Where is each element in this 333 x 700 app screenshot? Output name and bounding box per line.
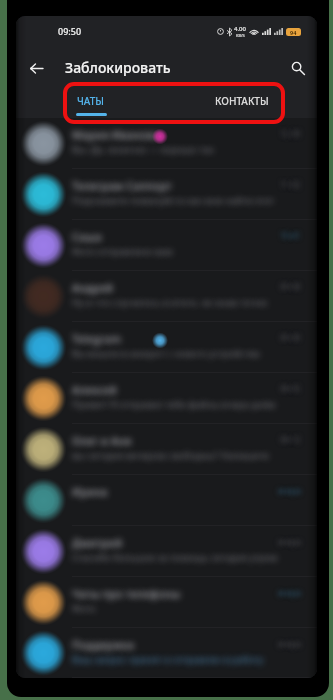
staticText: Поддержка <box>72 637 135 652</box>
staticText: Ирина <box>72 484 108 499</box>
button[interactable]: Чаты про телефоны <box>16 577 317 628</box>
button[interactable]: Мария Иванова <box>16 118 317 169</box>
staticText: Фото <box>72 602 96 615</box>
staticText: КОНТАКТЫ <box>215 94 269 108</box>
staticText: Саша <box>72 229 102 244</box>
button[interactable]: Андрей <box>16 271 317 322</box>
staticText: Привет! Я отправил тебе файлы вчера днём <box>72 398 276 411</box>
staticText: Андрей <box>72 280 113 295</box>
staticText: вчера <box>278 587 301 598</box>
staticText: 08:55 <box>280 383 301 394</box>
button[interactable]: КОНТАКТЫ <box>166 89 317 118</box>
button[interactable]: ЧАТЫ <box>16 89 166 118</box>
staticText: Вы вошли в аккаунт с нового устройства <box>72 347 260 360</box>
staticText: Фото отправлено вам <box>72 245 173 258</box>
staticText: Олег и Аня <box>72 433 132 448</box>
staticText: Подскажите пожалуйста как мне найти этот <box>72 194 274 207</box>
staticText: Спасибо большое за помощь сегодня утром <box>72 551 278 564</box>
staticText: 09:50 <box>58 25 82 37</box>
staticText: Алексей <box>72 382 117 397</box>
staticText: Telegram <box>72 331 121 346</box>
button[interactable]: Саша <box>16 220 317 271</box>
staticText: 10:41 <box>280 230 301 241</box>
button[interactable]: Телеграм Саппорт <box>16 169 317 220</box>
staticText: Вы: Да, конечно — хорошо так <box>72 143 214 156</box>
staticText: 09:30 <box>280 332 301 343</box>
staticText: 94 <box>290 29 297 36</box>
staticText: вчера <box>278 485 301 496</box>
button[interactable]: Поддержка <box>16 628 317 678</box>
staticText: Дмитрий <box>72 535 122 550</box>
staticText: 12:30 <box>280 128 301 139</box>
staticText: вчера <box>278 638 301 649</box>
button[interactable]: Telegram <box>16 322 317 373</box>
staticText: 4.00 <box>234 25 246 33</box>
staticText: KB/S <box>236 33 245 38</box>
staticText: Ваш запрос принят и отправлен в работу <box>72 653 264 666</box>
button[interactable]: Back <box>22 54 50 82</box>
staticText: Ну и что случилось в итоге, не знаю точн… <box>72 296 268 309</box>
staticText: вчера <box>278 536 301 547</box>
staticText: 09:58 <box>280 281 301 292</box>
button[interactable]: Олег и Аня <box>16 424 317 475</box>
staticText: Чаты про телефоны <box>72 586 181 601</box>
staticText: вы сегодня вечером свободны? Напишите <box>72 449 269 462</box>
button[interactable]: Алексей <box>16 373 317 424</box>
button[interactable]: Search <box>284 54 312 82</box>
button[interactable]: Дмитрий <box>16 526 317 577</box>
staticText: 08:12 <box>280 434 301 445</box>
button[interactable]: Ирина <box>16 475 317 526</box>
staticText: Мария Иванова <box>72 127 159 142</box>
staticText: Заблокировать <box>65 58 171 77</box>
staticText: ЧАТЫ <box>77 94 105 108</box>
staticText: Телеграм Саппорт <box>72 178 172 193</box>
